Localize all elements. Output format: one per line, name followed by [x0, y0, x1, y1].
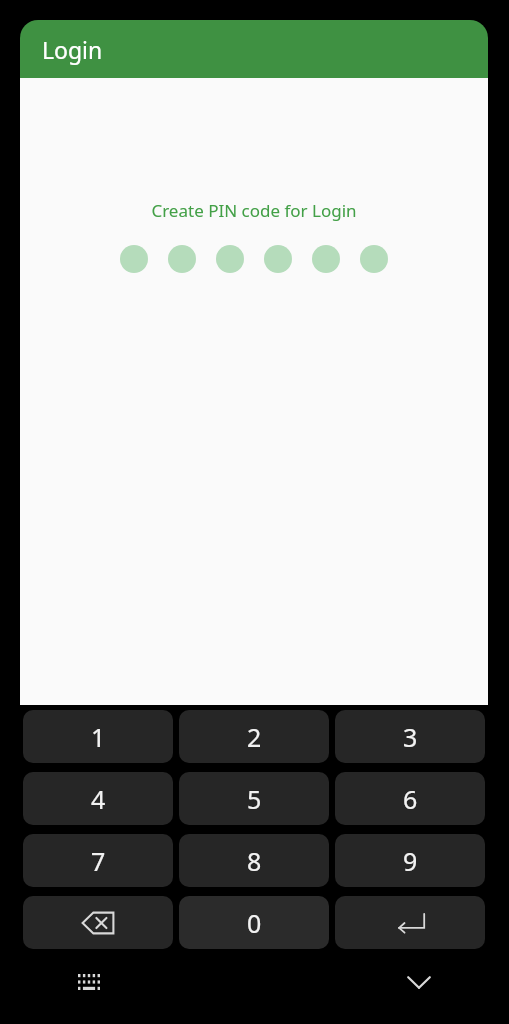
button[interactable]: 1	[23, 710, 173, 763]
button[interactable]: Switch keyboard	[67, 960, 111, 1004]
staticText: 6	[403, 782, 418, 816]
staticText: 5	[247, 782, 262, 816]
button[interactable]: 9	[335, 834, 485, 887]
staticText: 7	[91, 844, 106, 878]
staticText: 3	[403, 720, 418, 754]
staticText: 9	[403, 844, 418, 878]
button[interactable]: 8	[179, 834, 329, 887]
button[interactable]: 2	[179, 710, 329, 763]
staticText: Create PIN code for Login	[151, 199, 357, 222]
staticText: 0	[247, 906, 262, 940]
button[interactable]: 5	[179, 772, 329, 825]
button[interactable]: 7	[23, 834, 173, 887]
button[interactable]: 4	[23, 772, 173, 825]
staticText: 8	[247, 844, 262, 878]
staticText: 2	[247, 720, 262, 754]
button[interactable]: Hide keyboard	[397, 960, 441, 1004]
staticText: 4	[91, 782, 106, 816]
button[interactable]: Backspace	[23, 896, 173, 949]
button[interactable]: 3	[335, 710, 485, 763]
button[interactable]: Enter	[335, 896, 485, 949]
button[interactable]: 6	[335, 772, 485, 825]
button[interactable]: 0	[179, 896, 329, 949]
staticText: Login	[42, 34, 103, 65]
staticText: 1	[91, 720, 106, 754]
